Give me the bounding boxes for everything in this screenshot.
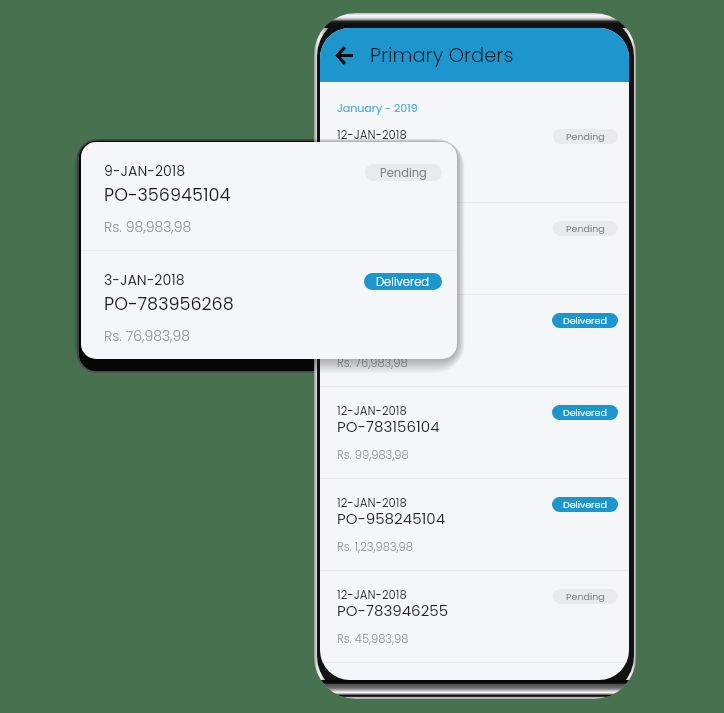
staticText: Pending [566,590,605,603]
staticText: 9-JAN-2018 [104,161,186,181]
staticText: 3-JAN-2018 [104,270,185,290]
staticText: Pending [380,165,427,181]
staticText: Rs. 1,23,983,98 [337,539,413,555]
staticText: PO-958245104 [337,508,446,529]
button[interactable]: Back [327,38,361,72]
button[interactable]: Pending [553,221,618,236]
staticText: Rs. 76,983,98 [337,355,408,371]
staticText: Pending [566,222,605,235]
button[interactable]: 12-JAN-2018 [320,387,629,479]
button[interactable]: 12-JAN-2018 [320,295,629,387]
staticText: 12-JAN-2018 [337,403,407,419]
staticText: Delivered [376,274,430,290]
button[interactable]: 12-JAN-2018 [320,203,629,295]
staticText: Rs. 45,983,98 [337,631,409,647]
staticText: Rs. 99,983,98 [337,447,409,463]
staticText: Rs. 76,983,98 [104,326,191,346]
staticText: PO-783946255 [337,600,449,621]
staticText: PO-356945104 [337,140,446,161]
button[interactable]: Pending [365,164,442,181]
staticText: Rs. 76,983,98 [337,263,408,279]
staticText: 12-JAN-2018 [337,127,407,143]
staticText: PO-356945104 [104,183,231,208]
staticText: Delivered [563,498,607,511]
button[interactable]: Delivered [364,273,442,290]
button[interactable]: 12-JAN-2018 [320,479,629,571]
button[interactable]: Delivered [552,313,618,328]
button[interactable]: 9-JAN-2018 [81,142,457,250]
staticText: 12-JAN-2018 [337,587,407,603]
button[interactable]: Delivered [552,405,618,420]
staticText: Delivered [563,406,607,419]
staticText: 12-JAN-2018 [337,495,407,511]
staticText: PO-783956268 [104,292,234,317]
button[interactable]: 12-JAN-2018 [320,111,629,203]
staticText: Pending [566,130,605,143]
button[interactable]: 3-JAN-2018 [81,251,457,359]
staticText: PO-783156104 [337,416,440,437]
button[interactable]: Pending [553,589,618,604]
staticText: Rs. 98,983,98 [337,171,409,187]
button[interactable]: 12-JAN-2018 [320,571,629,663]
staticText: January - 2019 [337,100,418,115]
staticText: Delivered [563,314,607,327]
button[interactable]: Delivered [552,497,618,512]
staticText: Primary Orders [370,42,514,69]
button[interactable]: Pending [553,129,618,144]
staticText: Rs. 98,983,98 [104,217,192,237]
